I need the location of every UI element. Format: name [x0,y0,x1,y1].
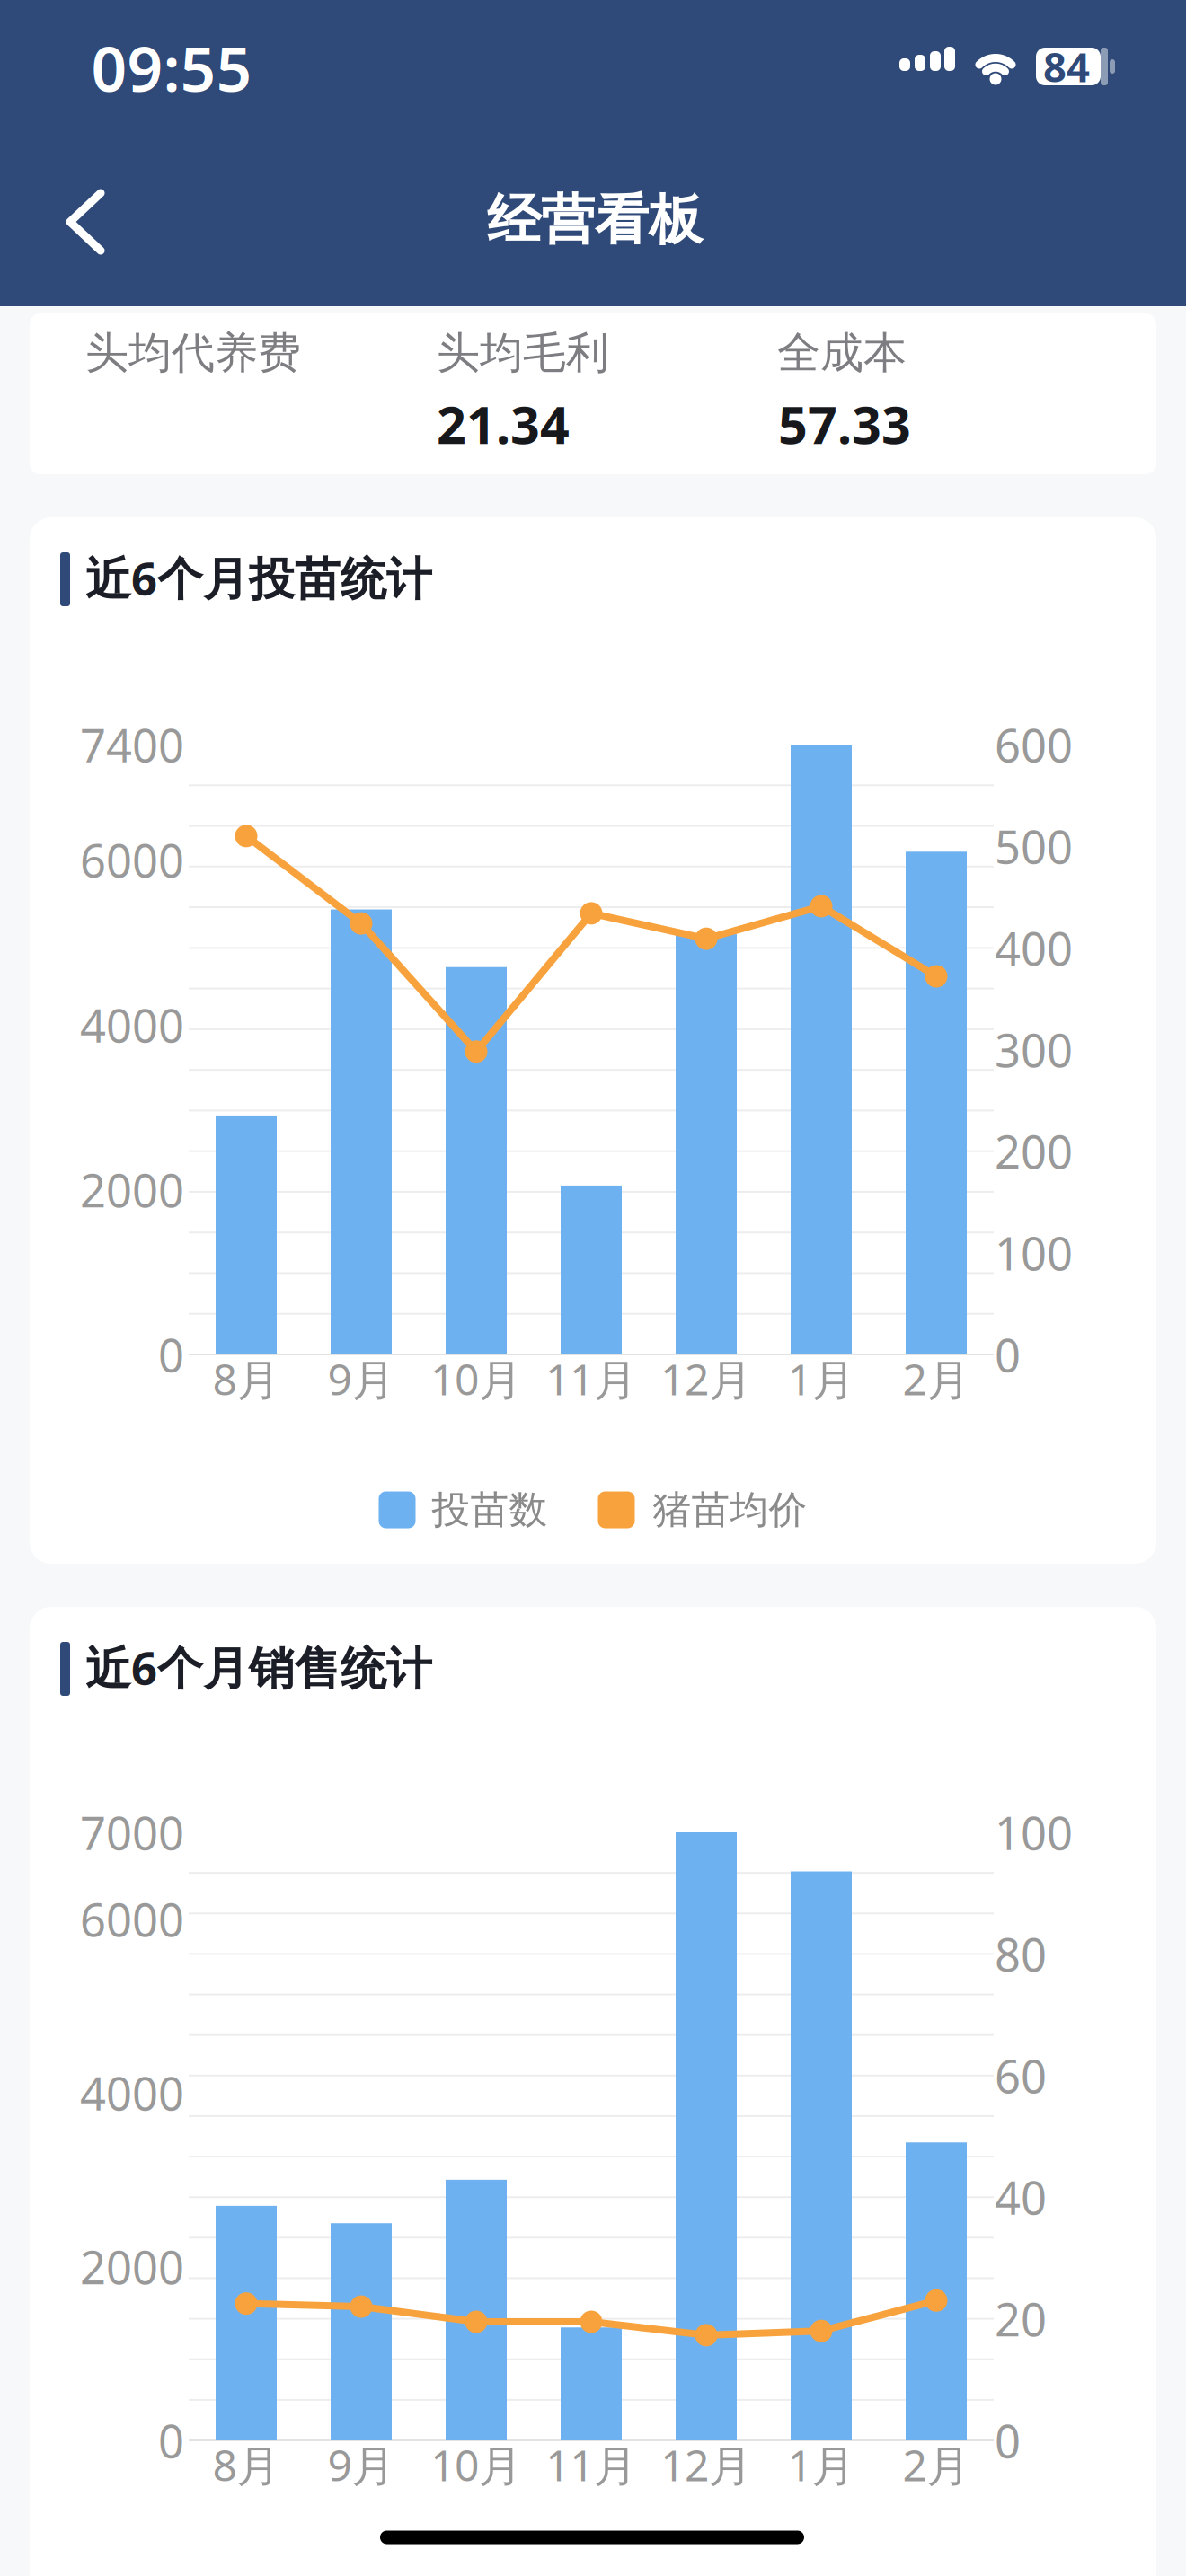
staticText: 11月 [545,1350,637,1407]
staticText: 200 [995,1121,1073,1181]
staticText: 9月 [327,2436,395,2493]
staticText: 10月 [430,1350,522,1407]
staticText: 21.34 [437,390,570,458]
staticText: 1月 [788,2436,855,2493]
staticText: 11月 [545,2436,637,2493]
staticText: 2月 [903,1350,970,1407]
staticText: 近6个月销售统计 [85,1637,432,1697]
staticText: 6000 [80,1889,184,1949]
staticText: 60 [995,2045,1047,2106]
button[interactable]: Back [18,168,135,276]
staticText: 2000 [80,2236,184,2297]
staticText: 400 [995,918,1073,978]
staticText: 300 [995,1019,1073,1080]
staticText: 6000 [80,830,184,890]
staticText: 0 [158,2410,184,2471]
staticText: 头均毛利 [437,326,609,379]
staticText: 投苗数 [432,1486,548,1533]
staticText: 2000 [80,1159,184,1220]
staticText: 500 [995,816,1073,876]
staticText: 7400 [80,714,184,775]
staticText: 20 [995,2289,1047,2349]
staticText: 7000 [80,1802,184,1863]
staticText: 4000 [80,2063,184,2123]
staticText: 头均代养费 [85,326,301,379]
staticText: 0 [995,1324,1021,1385]
staticText: 全成本 [777,326,907,379]
staticText: 12月 [660,1350,752,1407]
staticText: 10月 [430,2436,522,2493]
staticText: 1月 [788,1350,855,1407]
staticText: 近6个月投苗统计 [85,547,432,608]
staticText: 100 [995,1223,1073,1283]
staticText: 09:55 [91,26,252,109]
staticText: 12月 [660,2436,752,2493]
staticText: 4000 [80,995,184,1055]
staticText: 8月 [212,2436,280,2493]
staticText: 2月 [903,2436,970,2493]
staticText: 57.33 [778,390,911,458]
staticText: 84 [1043,39,1090,94]
staticText: 600 [995,714,1073,775]
staticText: 0 [995,2410,1021,2471]
staticText: 0 [158,1324,184,1385]
staticText: 8月 [212,1350,280,1407]
staticText: 猪苗均价 [653,1486,807,1533]
staticText: 100 [995,1802,1073,1863]
staticText: 40 [995,2167,1047,2227]
staticText: 80 [995,1924,1047,1984]
staticText: 9月 [327,1350,395,1407]
staticText: 经营看板 [487,187,703,253]
